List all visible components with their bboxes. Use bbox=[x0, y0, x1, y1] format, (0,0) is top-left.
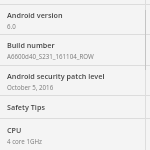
button[interactable]: CPU bbox=[0, 119, 150, 150]
staticText: Build number bbox=[7, 40, 55, 50]
staticText: Android security patch level bbox=[7, 71, 105, 81]
button[interactable]: Safety Tips bbox=[0, 96, 150, 118]
button[interactable]: Build number bbox=[0, 35, 150, 65]
staticText: October 5, 2016 bbox=[7, 83, 54, 91]
staticText: CPU bbox=[7, 125, 22, 135]
staticText: 6.0 bbox=[7, 22, 16, 30]
staticText: Android version bbox=[7, 10, 63, 20]
staticText: 4 core 1GHz bbox=[7, 137, 42, 145]
staticText: A6600d40_S231_161104_ROW bbox=[7, 52, 94, 60]
button[interactable]: Android security patch level bbox=[0, 66, 150, 95]
button[interactable]: Android version bbox=[0, 5, 150, 34]
staticText: Safety Tips bbox=[7, 102, 45, 112]
